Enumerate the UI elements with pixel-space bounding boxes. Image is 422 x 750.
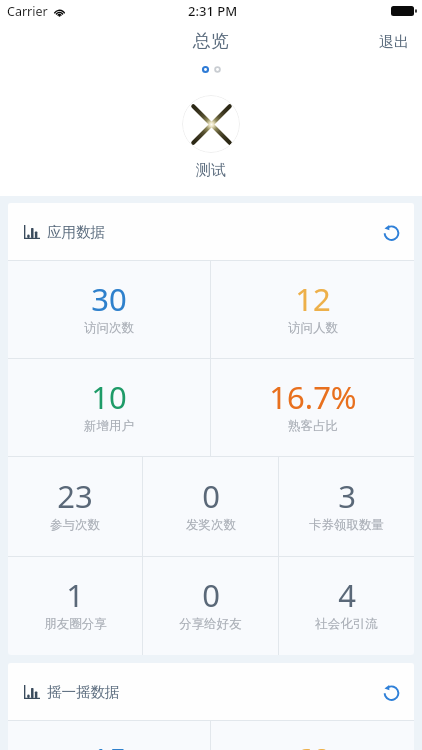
button[interactable]: 退出 (363, 27, 422, 58)
staticText: 测试 (196, 161, 226, 180)
button[interactable]: 10 (8, 359, 210, 456)
staticText: 访问次数 (84, 320, 134, 336)
staticText: 4 (338, 574, 356, 616)
staticText: 3 (338, 475, 356, 517)
staticText: 23 (57, 475, 93, 517)
staticText: 12 (295, 278, 331, 320)
button[interactable]: 1 (8, 557, 142, 655)
staticText: 访问人数 (288, 320, 338, 336)
staticText: 卡券领取数量 (309, 517, 384, 533)
button[interactable]: 0 (143, 457, 278, 556)
staticText: 朋友圈分享 (44, 616, 107, 632)
button[interactable]: 60 (211, 721, 414, 750)
staticText: 0 (202, 574, 220, 616)
button[interactable]: Refresh (374, 216, 406, 248)
staticText: 60 (295, 738, 331, 750)
staticText: 发奖次数 (186, 517, 236, 533)
button[interactable]: 4 (279, 557, 414, 655)
staticText: Carrier (7, 3, 48, 20)
staticText: 15 (91, 738, 127, 750)
button[interactable]: 0 (143, 557, 278, 655)
button[interactable]: Avatar (182, 95, 240, 153)
staticText: 10 (91, 376, 127, 418)
staticText: 30 (91, 278, 127, 320)
button[interactable]: 15 (8, 721, 210, 750)
staticText: 应用数据 (47, 223, 105, 241)
staticText: 参与次数 (50, 517, 100, 533)
staticText: 总览 (193, 30, 229, 53)
button[interactable]: 23 (8, 457, 142, 556)
button[interactable]: 12 (211, 261, 414, 358)
button[interactable]: Refresh (374, 676, 406, 708)
staticText: 摇一摇数据 (47, 683, 120, 701)
staticText: 分享给好友 (179, 616, 242, 632)
staticText: 退出 (379, 33, 409, 52)
staticText: 社会化引流 (315, 616, 378, 632)
staticText: 2:31 PM (188, 2, 238, 20)
staticText: 1 (66, 574, 84, 616)
staticText: 熟客占比 (288, 418, 338, 434)
button[interactable]: 30 (8, 261, 210, 358)
button[interactable]: 16.7% (211, 359, 414, 456)
staticText: 16.7% (269, 376, 357, 418)
staticText: 新增用户 (84, 418, 134, 434)
button[interactable]: 3 (279, 457, 414, 556)
staticText: 0 (202, 475, 220, 517)
